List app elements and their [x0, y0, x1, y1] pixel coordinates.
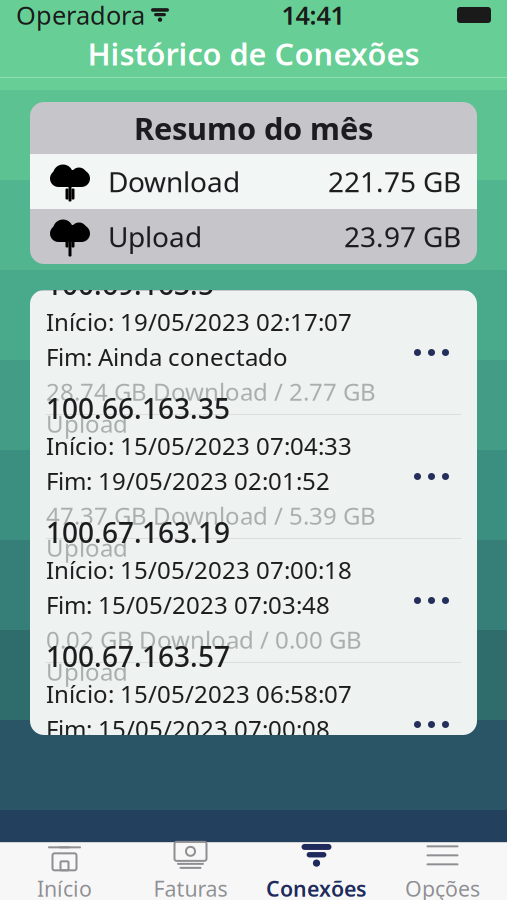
staticText: 100.66.163.35: [46, 390, 230, 427]
staticText: 0.02 GB Download / 0.00 GB Upload: [46, 624, 362, 687]
staticText: Histórico de Conexões: [87, 33, 419, 74]
staticText: 100.69.163.5: [46, 266, 214, 303]
staticText: 100.67.163.57: [46, 638, 230, 675]
staticText: Operadora: [16, 0, 145, 32]
button[interactable]: 100.66.163.35: [30, 415, 477, 538]
staticText: Histórico: [185, 245, 322, 285]
staticText: Início: 15/05/2023 07:04:33: [46, 430, 352, 462]
staticText: 28.74 GB Download / 2.77 GB Upload: [46, 376, 376, 439]
staticText: Fim: 15/05/2023 07:00:08: [46, 713, 330, 745]
staticText: 100.67.163.19: [46, 514, 230, 551]
staticText: Fim: 19/05/2023 02:01:52: [46, 465, 330, 497]
staticText: Fim: Ainda conectado: [46, 341, 288, 373]
button[interactable]: Faturas: [127, 843, 253, 900]
staticText: 23.97 GB: [344, 218, 461, 255]
button[interactable]: 100.67.163.57: [30, 663, 477, 786]
button[interactable]: Opções: [379, 843, 505, 900]
staticText: Opções: [405, 874, 480, 900]
staticText: Início: [37, 874, 92, 900]
staticText: Upload: [108, 218, 202, 255]
staticText: Início: 15/05/2023 06:58:07: [46, 678, 352, 710]
staticText: Download: [108, 163, 240, 200]
button[interactable]: 100.69.163.5: [30, 291, 477, 414]
staticText: Início: 15/05/2023 07:00:18: [46, 554, 352, 586]
staticText: Resumo do mês: [134, 108, 373, 148]
button[interactable]: Início: [1, 843, 127, 900]
button[interactable]: 100.67.163.19: [30, 539, 477, 662]
staticText: Início: 19/05/2023 02:17:07: [46, 306, 352, 338]
staticText: Fim: 15/05/2023 07:03:48: [46, 589, 330, 621]
staticText: Conexões: [266, 874, 367, 900]
staticText: Faturas: [153, 874, 227, 900]
staticText: 221.75 GB: [328, 163, 461, 200]
staticText: 47.37 GB Download / 5.39 GB Upload: [46, 500, 376, 563]
button[interactable]: Conexões: [253, 843, 379, 900]
staticText: 14:41: [281, 0, 344, 32]
